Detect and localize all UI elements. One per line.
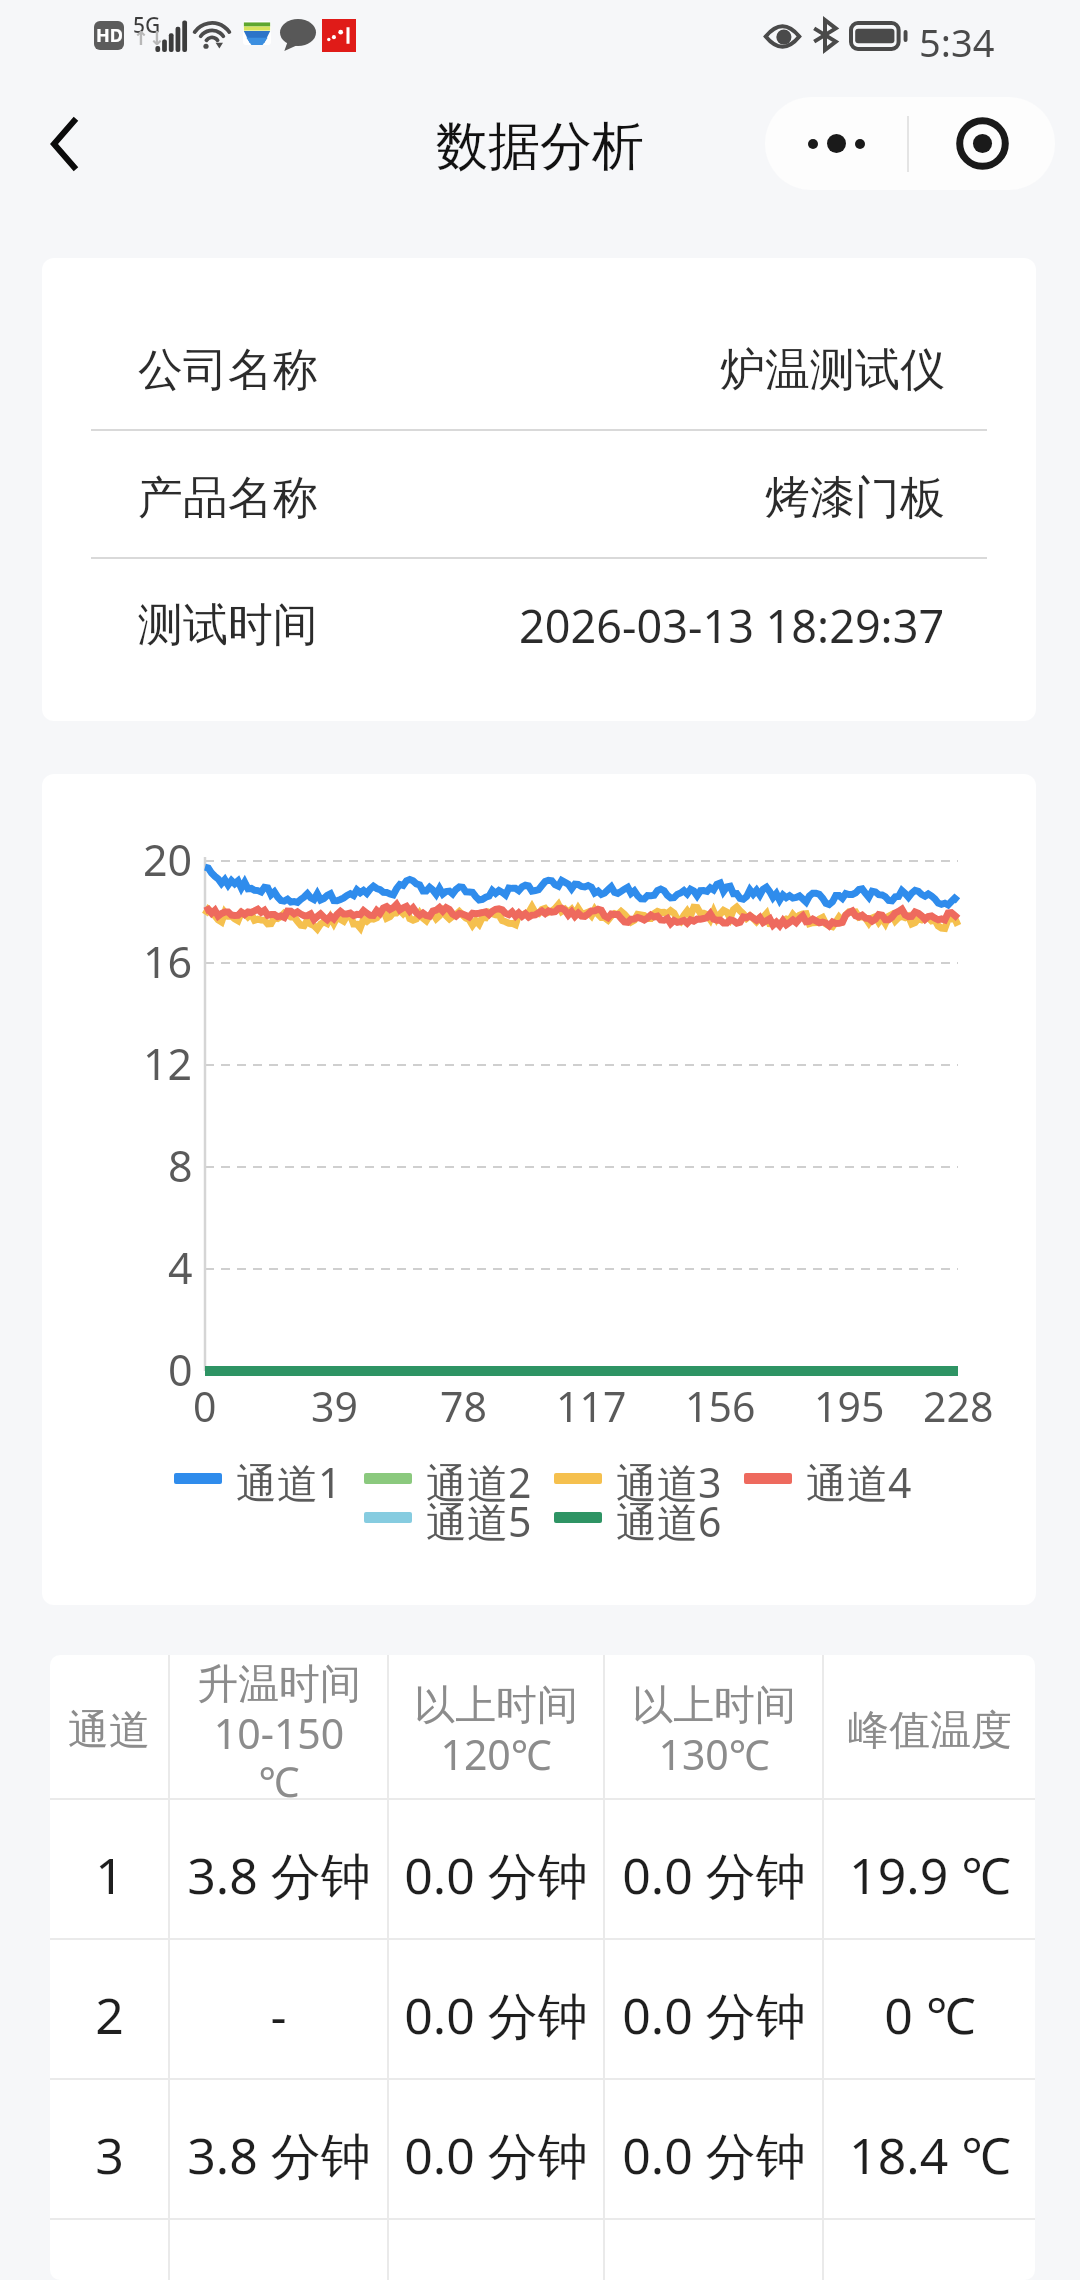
staticText: 0.0 分钟 — [404, 1841, 588, 1909]
staticText: 228 — [923, 1378, 994, 1434]
staticText: 通道3 — [616, 1454, 722, 1502]
staticText: 0.0 分钟 — [404, 1981, 588, 2049]
staticText: 以上时间 130℃ — [632, 1680, 796, 1782]
staticText: 1 — [95, 1841, 124, 1909]
button[interactable]: 公司名称 — [138, 258, 945, 429]
button[interactable]: 通道1 — [174, 1454, 342, 1502]
staticText: 117 — [556, 1378, 627, 1434]
staticText: 测试时间 — [138, 597, 318, 654]
staticText: 4 — [168, 1238, 193, 1297]
staticText: 通道1 — [236, 1454, 342, 1502]
staticText: 数据分析 — [436, 114, 644, 180]
staticText: 升温时间 10-150 ℃ — [197, 1659, 361, 1802]
button[interactable]: Back — [24, 92, 104, 196]
staticText: 5G — [133, 11, 161, 40]
button[interactable]: 产品名称 — [138, 429, 945, 557]
button[interactable]: 通道6 — [554, 1493, 722, 1541]
staticText: 0.0 分钟 — [622, 2121, 806, 2189]
staticText: 通道 — [68, 1705, 150, 1757]
button[interactable]: 3 — [50, 2080, 1035, 2218]
staticText: 39 — [311, 1378, 358, 1434]
staticText: - — [270, 1981, 287, 2049]
staticText: 16 — [143, 932, 193, 991]
staticText: 炉温测试仪 — [720, 342, 945, 399]
staticText: ↑↓ — [133, 27, 165, 49]
button[interactable]: 2 — [50, 1940, 1035, 2078]
button[interactable]: 1 — [50, 1800, 1035, 1938]
staticText: 2026-03-13 18:29:37 — [519, 595, 945, 656]
staticText: 烤漆门板 — [765, 470, 945, 527]
staticText: 通道4 — [806, 1454, 912, 1502]
staticText: 12 — [143, 1034, 193, 1093]
staticText: 0 — [193, 1378, 217, 1434]
staticText: 18.4 ℃ — [849, 2121, 1011, 2189]
button[interactable]: 通道2 — [364, 1454, 532, 1502]
staticText: 8 — [168, 1136, 193, 1195]
staticText: HD — [96, 23, 123, 48]
staticText: 公司名称 — [138, 342, 318, 399]
staticText: 2 — [95, 1981, 124, 2049]
staticText: 3 — [95, 2121, 124, 2189]
staticText: 0.0 分钟 — [622, 1981, 806, 2049]
button[interactable]: 通道4 — [744, 1454, 912, 1502]
button[interactable]: Close mini program — [909, 97, 1055, 190]
staticText: 以上时间 120℃ — [414, 1680, 578, 1782]
button[interactable]: 通道3 — [554, 1454, 722, 1502]
staticText: 峰值温度 — [848, 1705, 1012, 1757]
staticText: 通道5 — [426, 1493, 532, 1541]
staticText: 通道2 — [426, 1454, 532, 1502]
staticText: 0 — [168, 1340, 193, 1399]
button[interactable]: More — [765, 97, 907, 190]
staticText: 3.8 分钟 — [187, 2121, 371, 2189]
staticText: 0.0 分钟 — [622, 1841, 806, 1909]
staticText: 产品名称 — [138, 470, 318, 527]
staticText: 5:34 — [919, 16, 995, 68]
staticText: 20 — [143, 830, 193, 889]
staticText: 0.0 分钟 — [404, 2121, 588, 2189]
staticText: 19.9 ℃ — [849, 1841, 1011, 1909]
staticText: 3.8 分钟 — [187, 1841, 371, 1909]
button[interactable]: 通道5 — [364, 1493, 532, 1541]
staticText: 0 ℃ — [884, 1981, 976, 2049]
staticText: 195 — [814, 1378, 885, 1434]
staticText: 78 — [440, 1378, 487, 1434]
button[interactable]: 测试时间 — [138, 557, 945, 721]
staticText: 通道6 — [616, 1493, 722, 1541]
staticText: 156 — [685, 1378, 756, 1434]
